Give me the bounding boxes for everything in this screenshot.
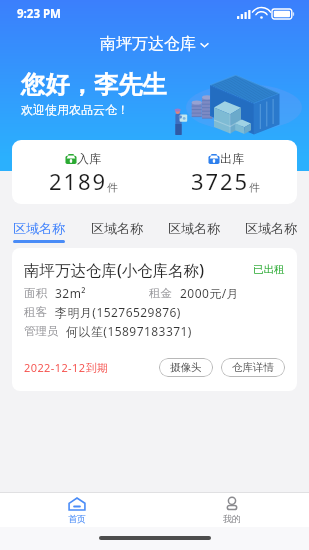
staticText: 已出租 bbox=[253, 263, 285, 276]
button[interactable]: 区域名称 bbox=[0, 220, 78, 244]
staticText: 2189 bbox=[49, 166, 107, 196]
button[interactable]: 区域名称 bbox=[78, 220, 155, 244]
staticText: 我的 bbox=[223, 513, 241, 524]
button[interactable]: 首页 bbox=[0, 493, 154, 527]
staticText: 管理员 bbox=[24, 324, 59, 338]
staticText: 区域名称 bbox=[245, 220, 297, 236]
staticText: 南坪万达仓库 bbox=[100, 34, 196, 54]
staticText: 入库 bbox=[77, 151, 101, 166]
button[interactable]: 南坪万达仓库(小仓库名称) bbox=[12, 248, 297, 391]
staticText: 2000元/月 bbox=[180, 285, 240, 301]
button[interactable]: 仓库详情 bbox=[221, 358, 285, 377]
staticText: 仓库详情 bbox=[232, 361, 274, 374]
staticText: 租金 bbox=[149, 286, 172, 300]
staticText: 欢迎使用农品云仓！ bbox=[21, 102, 129, 117]
button[interactable]: 区域名称 bbox=[155, 220, 232, 244]
staticText: 2022-12-12到期 bbox=[24, 360, 109, 375]
staticText: 南坪万达仓库(小仓库名称) bbox=[24, 259, 205, 280]
button[interactable]: 入库 bbox=[12, 140, 154, 204]
button[interactable]: 出库 bbox=[154, 140, 297, 204]
staticText: 区域名称 bbox=[168, 220, 220, 236]
staticText: 面积 bbox=[24, 286, 47, 300]
staticText: 件 bbox=[249, 181, 260, 194]
staticText: 何以笙(15897183371) bbox=[66, 323, 192, 339]
staticText: 区域名称 bbox=[91, 220, 143, 236]
button[interactable]: 区域名称 bbox=[232, 220, 309, 244]
staticText: 您好，李先生 bbox=[21, 70, 167, 101]
staticText: 32m² bbox=[55, 285, 86, 301]
button[interactable]: 我的 bbox=[154, 493, 309, 527]
staticText: 出库 bbox=[220, 151, 244, 166]
staticText: 9:23 PM bbox=[17, 6, 61, 22]
staticText: 租客 bbox=[24, 305, 47, 319]
staticText: 李明月(15276529876) bbox=[55, 304, 181, 320]
staticText: 件 bbox=[107, 181, 118, 194]
staticText: 首页 bbox=[68, 513, 86, 524]
staticText: 摄像头 bbox=[170, 361, 202, 374]
button[interactable]: 摄像头 bbox=[159, 358, 213, 377]
staticText: 3725 bbox=[191, 166, 249, 196]
button[interactable]: 南坪万达仓库 bbox=[100, 34, 210, 54]
staticText: 区域名称 bbox=[13, 220, 65, 236]
